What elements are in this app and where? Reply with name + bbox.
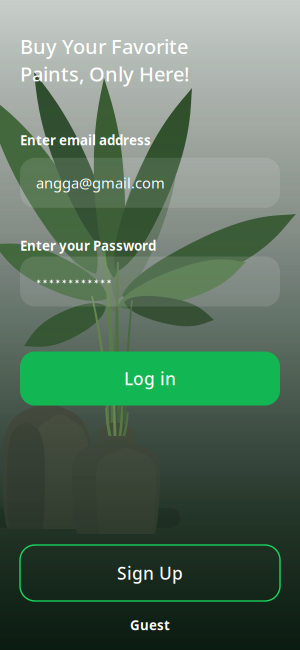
staticText: Guest xyxy=(130,616,170,634)
button[interactable]: angga@gmail.com xyxy=(20,158,280,208)
button[interactable]: Sign Up xyxy=(20,545,280,601)
button[interactable]: Password xyxy=(20,256,280,306)
staticText: Log in xyxy=(124,367,176,390)
staticText: Enter your Password xyxy=(20,237,156,254)
staticText: Buy Your Favorite xyxy=(20,33,188,60)
button[interactable]: Guest xyxy=(20,616,280,634)
staticText: angga@gmail.com xyxy=(36,173,165,193)
staticText: Sign Up xyxy=(117,561,183,584)
staticText: Enter email address xyxy=(20,131,151,149)
staticText: Paints, Only Here! xyxy=(20,61,189,87)
button[interactable]: Log in xyxy=(20,351,280,405)
